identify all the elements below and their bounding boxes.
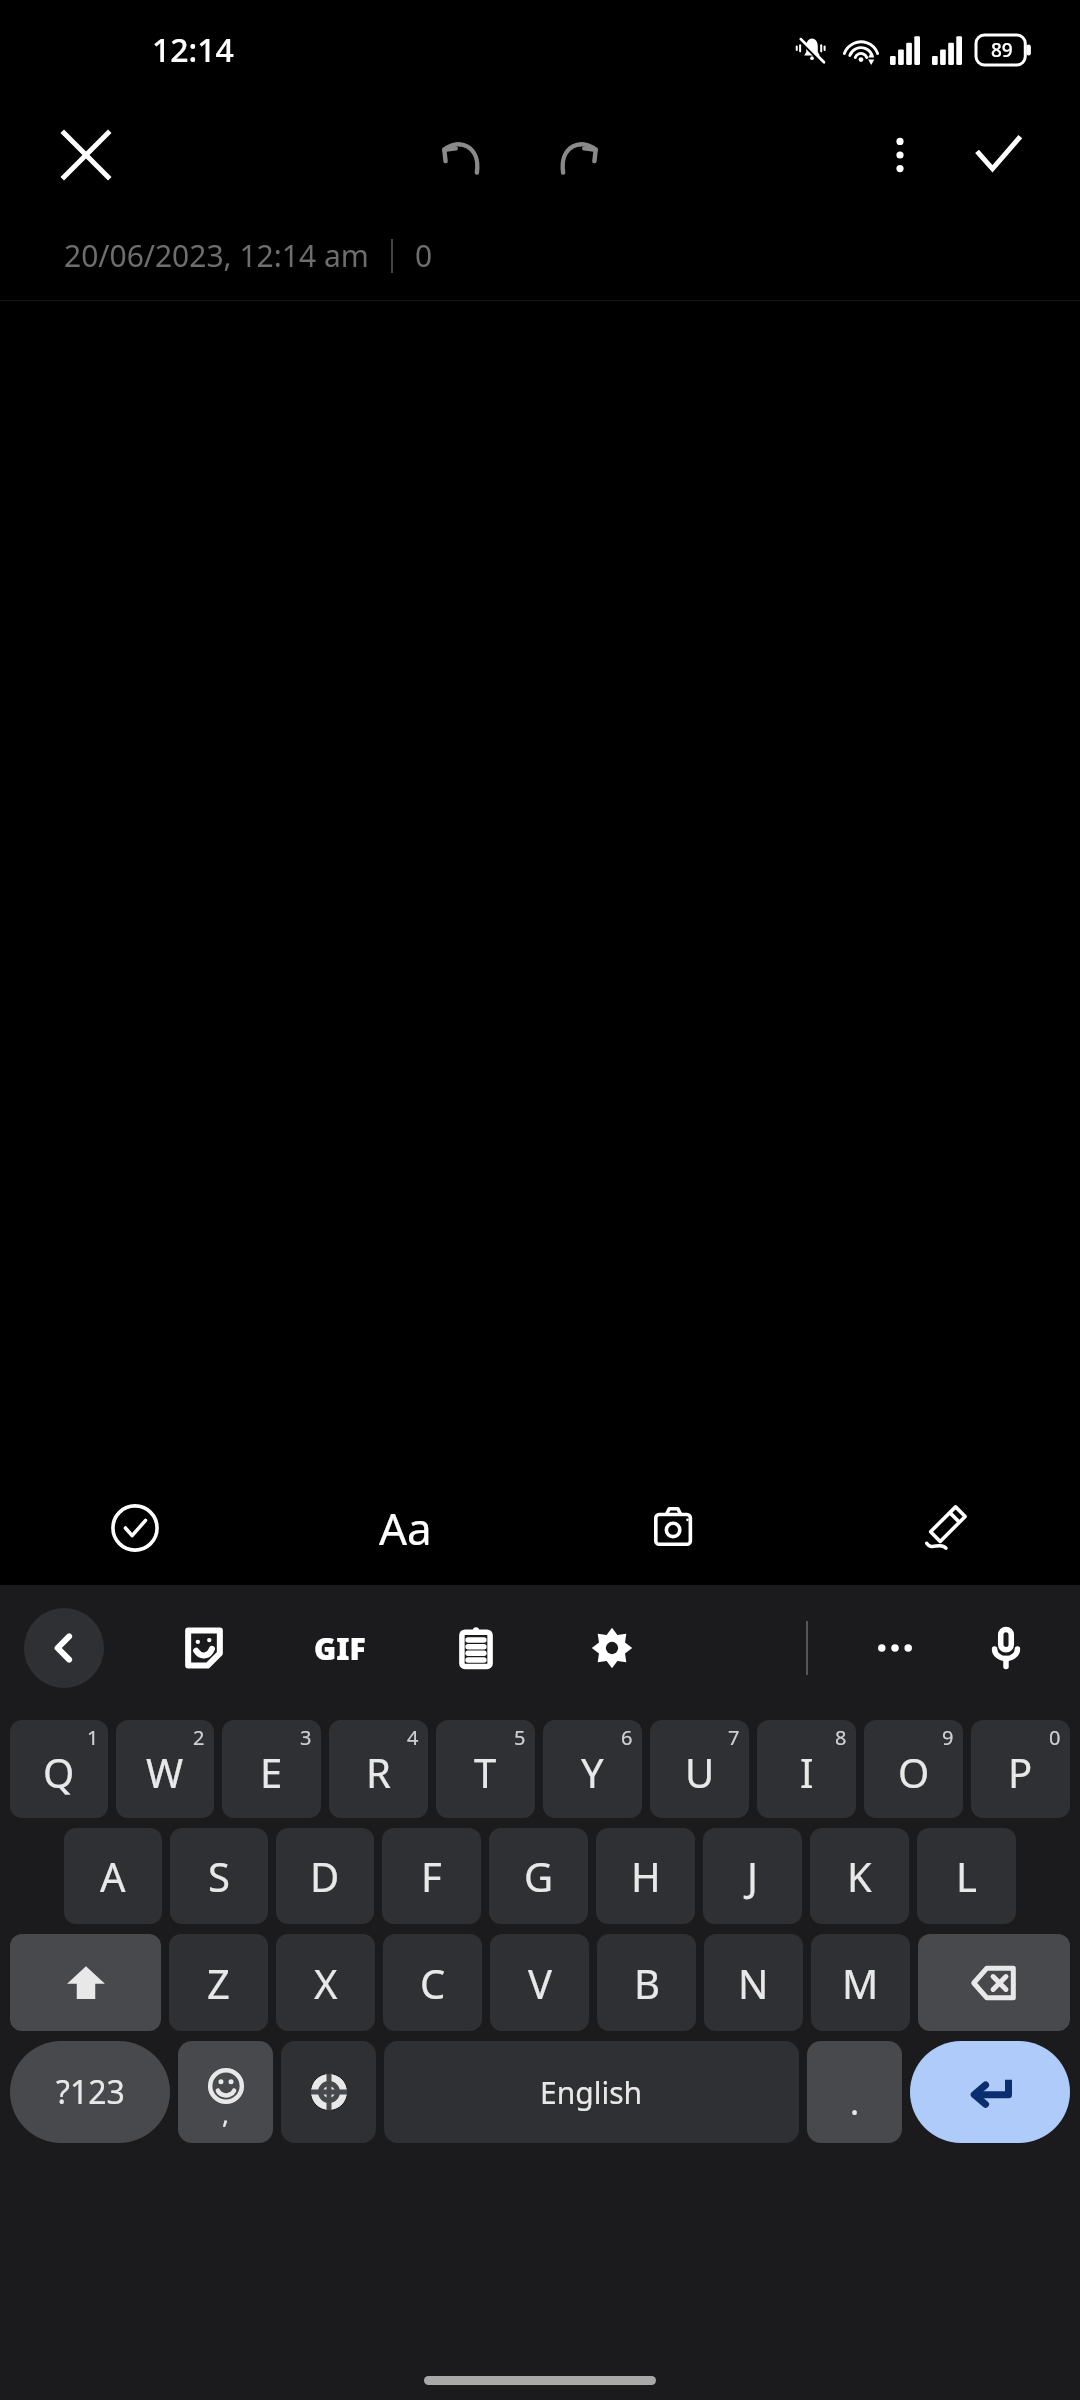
staticText: , [222,2096,229,2131]
staticText: V [528,1956,552,2010]
staticText: 6 [621,1724,633,1751]
button[interactable]: G [489,1828,588,1924]
staticText: Y [581,1745,604,1799]
button[interactable]: More options [860,115,940,195]
staticText: English [540,2072,643,2113]
button[interactable]: Change language [281,2041,376,2143]
staticText: B [634,1956,660,2010]
staticText: O [898,1745,930,1799]
staticText: S [208,1849,230,1903]
button[interactable]: C [383,1934,482,2031]
staticText: P [1008,1745,1033,1799]
button[interactable]: N [704,1934,803,2031]
button[interactable]: GIF [308,1616,372,1680]
staticText: T [474,1745,497,1799]
staticText: N [738,1956,769,2010]
staticText: D [310,1849,340,1903]
button[interactable]: A [64,1828,162,1924]
button[interactable]: O [864,1720,963,1818]
button[interactable]: V [490,1934,589,2031]
button[interactable]: Save [958,115,1038,195]
staticText: F [421,1849,442,1903]
button[interactable]: Enter [910,2041,1070,2143]
staticText: A [100,1849,126,1903]
button[interactable]: ?123 [10,2041,170,2143]
button[interactable]: Clipboard [444,1616,508,1680]
button[interactable]: W [116,1720,214,1818]
button[interactable]: Stickers [172,1616,236,1680]
staticText: GIF [314,1628,366,1669]
staticText: U [685,1745,715,1799]
button[interactable]: Period [807,2041,902,2143]
button[interactable]: Undo [421,115,501,195]
staticText: 3 [300,1724,312,1751]
staticText: M [842,1956,879,2010]
button[interactable]: Backspace [918,1934,1070,2031]
staticText: 20/06/2023, 12:14 am [64,235,369,276]
button[interactable]: English [384,2041,799,2143]
button[interactable]: K [810,1828,909,1924]
staticText: C [420,1956,446,2010]
button[interactable]: U [650,1720,749,1818]
button[interactable]: T [436,1720,535,1818]
staticText: . [850,2079,860,2125]
staticText: 7 [728,1724,740,1751]
button[interactable]: Checklist [0,1470,270,1585]
button[interactable]: E [222,1720,321,1818]
staticText: I [800,1745,814,1799]
button[interactable]: R [329,1720,428,1818]
button[interactable]: X [276,1934,375,2031]
staticText: 12:14 [152,28,234,72]
staticText: L [956,1849,977,1903]
button[interactable]: Y [543,1720,642,1818]
staticText: K [847,1849,872,1903]
button[interactable]: Back [24,1608,104,1688]
button[interactable]: B [597,1934,696,2031]
button[interactable]: Shift [10,1934,161,2031]
staticText: 4 [407,1724,419,1751]
button[interactable]: Emoji [178,2041,273,2143]
button[interactable]: D [276,1828,374,1924]
button[interactable]: Q [10,1720,108,1818]
button[interactable]: I [757,1720,856,1818]
staticText: Aa [379,1498,432,1558]
button[interactable]: Camera [540,1470,810,1585]
staticText: 8 [835,1724,847,1751]
button[interactable]: J [703,1828,802,1924]
staticText: X [314,1956,338,2010]
staticText: J [747,1849,758,1903]
button[interactable]: Z [169,1934,268,2031]
button[interactable]: M [811,1934,910,2031]
button[interactable]: Voice input [974,1616,1038,1680]
button[interactable]: Draw [810,1470,1080,1585]
staticText: 0 [1049,1724,1061,1751]
staticText: R [366,1745,391,1799]
button[interactable]: L [917,1828,1016,1924]
button[interactable]: P [971,1720,1070,1818]
staticText: G [524,1849,554,1903]
button[interactable]: More [860,1613,930,1683]
staticText: Z [207,1956,230,2010]
button[interactable]: Formatting [270,1470,540,1585]
staticText: 89 [991,37,1013,63]
staticText: ?123 [56,2070,125,2114]
button[interactable]: H [596,1828,695,1924]
staticText: W [146,1745,184,1799]
button[interactable]: Redo [539,115,619,195]
button[interactable]: F [382,1828,481,1924]
staticText: E [260,1745,283,1799]
button[interactable]: S [170,1828,268,1924]
staticText: 0 [415,235,433,276]
staticText: 9 [942,1724,954,1751]
button[interactable]: Close [50,119,122,191]
staticText: Q [43,1745,75,1799]
button[interactable]: Settings [580,1616,644,1680]
staticText: 2 [193,1724,205,1751]
staticText: 1 [87,1724,99,1751]
staticText: H [631,1849,661,1903]
staticText: 5 [514,1724,526,1751]
